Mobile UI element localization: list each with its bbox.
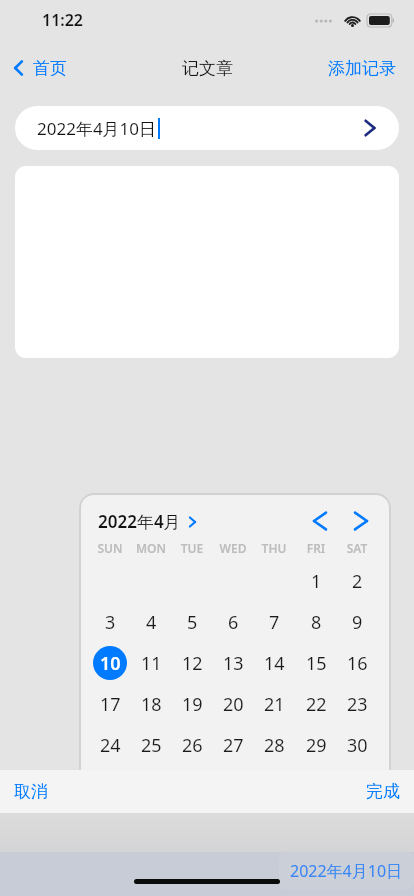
button[interactable]: 取消: [14, 781, 48, 802]
staticText: 30: [347, 733, 368, 758]
staticText: 13: [223, 651, 244, 676]
button[interactable]: 7: [257, 605, 291, 639]
staticText: 6: [228, 610, 239, 635]
button[interactable]: 2022年4月10日: [15, 106, 399, 150]
button[interactable]: 5: [175, 605, 209, 639]
staticText: 12: [182, 651, 203, 676]
button[interactable]: 29: [299, 728, 333, 762]
staticText: THU: [254, 540, 294, 556]
button[interactable]: 4: [134, 605, 168, 639]
button[interactable]: 21: [257, 687, 291, 721]
staticText: 2022年4月10日: [290, 860, 403, 882]
staticText: 2022年4月: [98, 510, 181, 533]
button[interactable]: 15: [299, 646, 333, 680]
staticText: 21: [264, 692, 285, 717]
staticText: 1: [311, 569, 322, 594]
staticText: 4: [146, 610, 157, 635]
staticText: 29: [306, 733, 327, 758]
button[interactable]: 3: [93, 605, 127, 639]
staticText: 18: [141, 692, 162, 717]
button[interactable]: 25: [134, 728, 168, 762]
staticText: SUN: [90, 540, 130, 556]
button[interactable]: 19: [175, 687, 209, 721]
button[interactable]: 2: [340, 564, 374, 598]
staticText: 27: [223, 733, 244, 758]
staticText: FRI: [296, 540, 336, 556]
staticText: 28: [264, 733, 285, 758]
button[interactable]: 8: [299, 605, 333, 639]
staticText: 5: [187, 610, 198, 635]
button[interactable]: 23: [340, 687, 374, 721]
staticText: 23: [347, 692, 368, 717]
button[interactable]: 首页: [12, 57, 67, 79]
button[interactable]: 1: [299, 564, 333, 598]
button[interactable]: 9: [340, 605, 374, 639]
staticText: 22: [306, 692, 327, 717]
staticText: 25: [141, 733, 162, 758]
staticText: 10: [100, 651, 121, 676]
button[interactable]: Next: [359, 115, 381, 141]
staticText: 记文章: [182, 58, 233, 79]
staticText: 添加记录: [328, 58, 396, 79]
staticText: 9: [352, 610, 363, 635]
button[interactable]: 完成: [366, 781, 400, 802]
button[interactable]: 22: [299, 687, 333, 721]
button[interactable]: 28: [257, 728, 291, 762]
staticText: 16: [347, 651, 368, 676]
staticText: 2: [352, 569, 363, 594]
button[interactable]: 11: [134, 646, 168, 680]
staticText: 19: [182, 692, 203, 717]
button[interactable]: 27: [216, 728, 250, 762]
button[interactable]: 12: [175, 646, 209, 680]
button[interactable]: Previous month: [305, 506, 335, 536]
staticText: 14: [264, 651, 285, 676]
button[interactable]: 26: [175, 728, 209, 762]
button[interactable]: 6: [216, 605, 250, 639]
button[interactable]: 20: [216, 687, 250, 721]
button[interactable]: 24: [93, 728, 127, 762]
staticText: MON: [131, 540, 171, 556]
staticText: 取消: [14, 781, 48, 802]
staticText: 26: [182, 733, 203, 758]
button[interactable]: 13: [216, 646, 250, 680]
button[interactable]: 10: [93, 646, 127, 680]
button[interactable]: 30: [340, 728, 374, 762]
staticText: 11:22: [42, 9, 84, 31]
staticText: 8: [311, 610, 322, 635]
staticText: 17: [100, 692, 121, 717]
button[interactable]: 添加记录: [328, 58, 396, 79]
button[interactable]: Select month: [186, 514, 199, 530]
button[interactable]: 16: [340, 646, 374, 680]
staticText: 24: [100, 733, 121, 758]
staticText: TUE: [172, 540, 212, 556]
staticText: 11: [141, 651, 162, 676]
staticText: 2022年4月10日: [37, 117, 157, 140]
staticText: 完成: [366, 781, 400, 802]
button[interactable]: 14: [257, 646, 291, 680]
staticText: 7: [269, 610, 280, 635]
button[interactable]: Next month: [346, 506, 376, 536]
button[interactable]: 2022年4月: [98, 510, 199, 533]
button[interactable]: 18: [134, 687, 168, 721]
staticText: 20: [223, 692, 244, 717]
button[interactable]: 17: [93, 687, 127, 721]
staticText: 3: [105, 610, 116, 635]
button[interactable]: 2022年4月10日: [279, 852, 414, 890]
staticText: WED: [213, 540, 253, 556]
staticText: SAT: [337, 540, 377, 556]
staticText: 首页: [33, 58, 67, 79]
staticText: 15: [306, 651, 327, 676]
